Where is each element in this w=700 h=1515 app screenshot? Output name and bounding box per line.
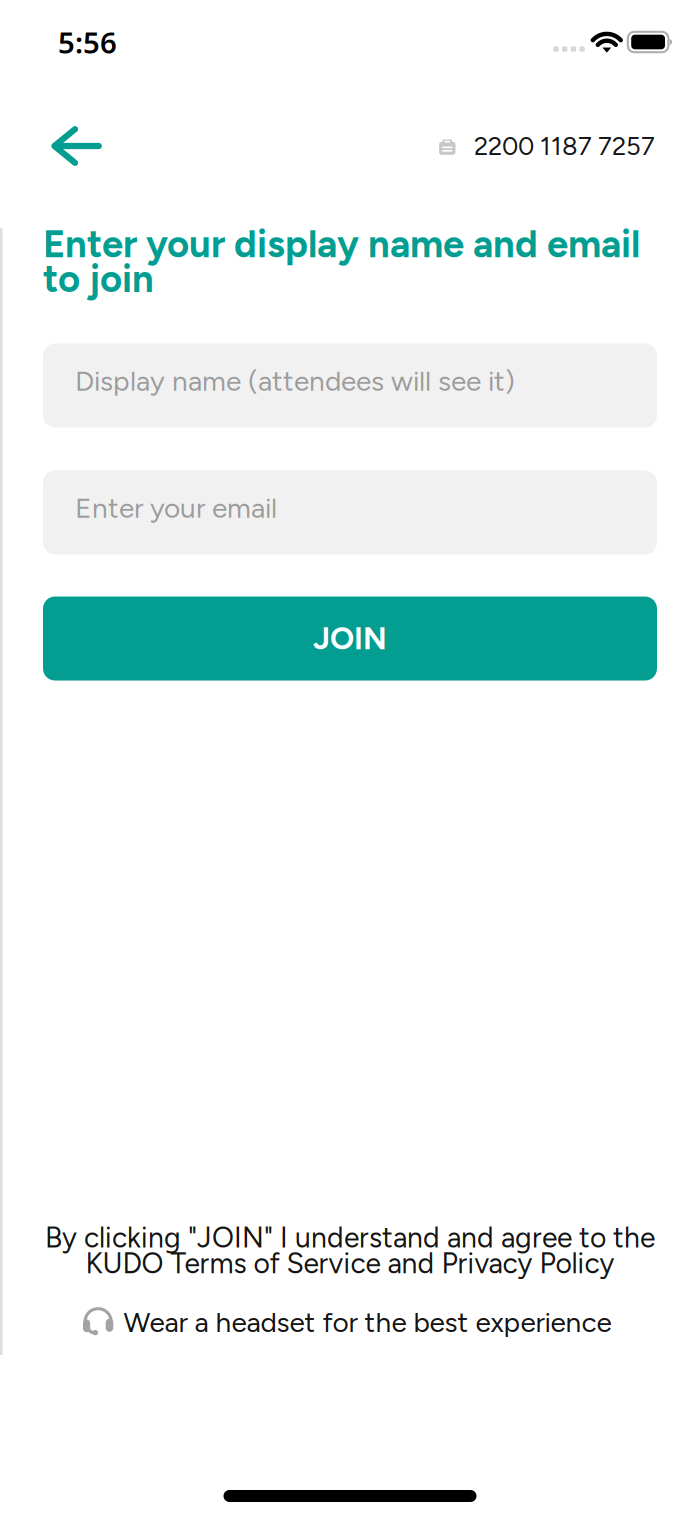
button[interactable]: Display name (attendees will see it) (43, 343, 657, 427)
button[interactable]: JOIN (43, 596, 657, 680)
staticText: By clicking "JOIN" I understand and agre… (45, 1221, 655, 1254)
staticText: Display name (attendees will see it) (75, 364, 515, 398)
staticText: Enter your display name and email (43, 221, 640, 267)
button[interactable]: 2200 1187 7257 (439, 121, 655, 171)
staticText: JOIN (313, 620, 387, 657)
staticText: 2200 1187 7257 (474, 131, 655, 161)
staticText: Enter your email (75, 491, 277, 525)
staticText: to join (43, 256, 154, 302)
staticText: KUDO Terms of Service and Privacy Policy (85, 1246, 614, 1280)
staticText: Wear a headset for the best experience (124, 1305, 612, 1339)
button[interactable]: Back (44, 116, 109, 176)
button[interactable]: Enter your email (43, 470, 657, 554)
staticText: 5:56 (58, 22, 117, 61)
